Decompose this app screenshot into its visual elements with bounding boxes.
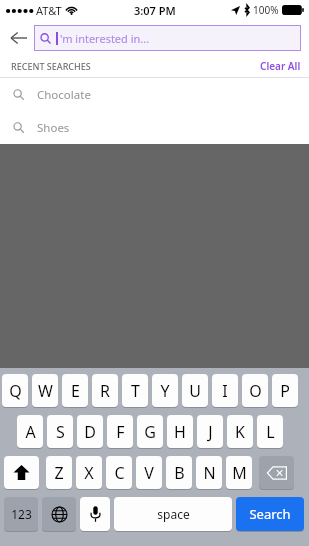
staticText: D <box>84 421 96 443</box>
button[interactable]: W <box>32 374 58 407</box>
staticText: Q <box>9 380 22 402</box>
staticText: S <box>56 421 65 443</box>
button[interactable]: N <box>196 456 222 489</box>
button[interactable]: Chocolate <box>0 78 309 111</box>
staticText: O <box>249 380 262 402</box>
staticText: I <box>222 380 228 402</box>
button[interactable]: U <box>182 374 208 407</box>
staticText: R <box>100 380 110 402</box>
button[interactable]: Voice input <box>80 497 110 531</box>
staticText: Search <box>249 505 291 523</box>
button[interactable]: K <box>227 415 253 448</box>
button[interactable]: V <box>136 456 162 489</box>
button[interactable]: Search <box>236 497 304 531</box>
staticText: RECENT SEARCHES <box>11 60 91 72</box>
button[interactable]: J <box>197 415 223 448</box>
button[interactable]: Q <box>2 374 28 407</box>
staticText: X <box>84 462 94 484</box>
staticText: G <box>144 421 156 443</box>
button[interactable]: P <box>272 374 298 407</box>
button[interactable]: O <box>242 374 268 407</box>
staticText: C <box>114 462 125 484</box>
button[interactable]: 'm interested in... <box>34 25 301 51</box>
staticText: 3:07 PM <box>134 3 176 18</box>
button[interactable]: Shift <box>4 456 39 489</box>
staticText: U <box>189 380 201 402</box>
staticText: B <box>174 462 185 484</box>
button[interactable]: Y <box>152 374 178 407</box>
staticText: Y <box>160 380 170 402</box>
button[interactable]: Switch keyboard <box>42 497 76 531</box>
button[interactable]: 123 <box>4 497 38 531</box>
button[interactable]: F <box>107 415 133 448</box>
button[interactable]: X <box>76 456 102 489</box>
staticText: A <box>25 421 36 443</box>
button[interactable]: C <box>106 456 132 489</box>
staticText: space <box>157 506 190 522</box>
button[interactable]: M <box>226 456 252 489</box>
button[interactable]: D <box>77 415 103 448</box>
staticText: Clear All <box>260 59 301 73</box>
staticText: 100% <box>253 3 279 17</box>
button[interactable]: G <box>137 415 163 448</box>
button[interactable]: R <box>92 374 118 407</box>
button[interactable]: I <box>212 374 238 407</box>
button[interactable]: Clear All <box>260 59 301 73</box>
button[interactable]: S <box>47 415 73 448</box>
button[interactable]: E <box>62 374 88 407</box>
staticText: W <box>38 380 53 402</box>
button[interactable]: A <box>17 415 43 448</box>
staticText: 'm interested in... <box>60 31 150 46</box>
button[interactable]: T <box>122 374 148 407</box>
button[interactable]: Z <box>46 456 72 489</box>
staticText: M <box>232 462 247 484</box>
button[interactable]: B <box>166 456 192 489</box>
staticText: H <box>174 421 186 443</box>
staticText: Z <box>54 462 64 484</box>
staticText: Shoes <box>37 120 70 136</box>
staticText: AT&T <box>36 3 62 18</box>
button[interactable]: Shoes <box>0 111 309 144</box>
staticText: T <box>131 380 140 402</box>
staticText: Chocolate <box>37 87 91 103</box>
staticText: 123 <box>11 506 32 522</box>
staticText: K <box>235 421 245 443</box>
button[interactable]: L <box>257 415 283 448</box>
button[interactable]: Backspace <box>259 456 294 489</box>
button[interactable]: H <box>167 415 193 448</box>
button[interactable]: space <box>114 497 232 531</box>
staticText: V <box>144 462 154 484</box>
staticText: E <box>71 380 80 402</box>
staticText: J <box>208 421 213 443</box>
staticText: L <box>266 421 275 443</box>
button[interactable]: Back <box>8 27 30 49</box>
staticText: N <box>203 462 216 484</box>
staticText: F <box>116 421 125 443</box>
staticText: P <box>280 380 290 402</box>
